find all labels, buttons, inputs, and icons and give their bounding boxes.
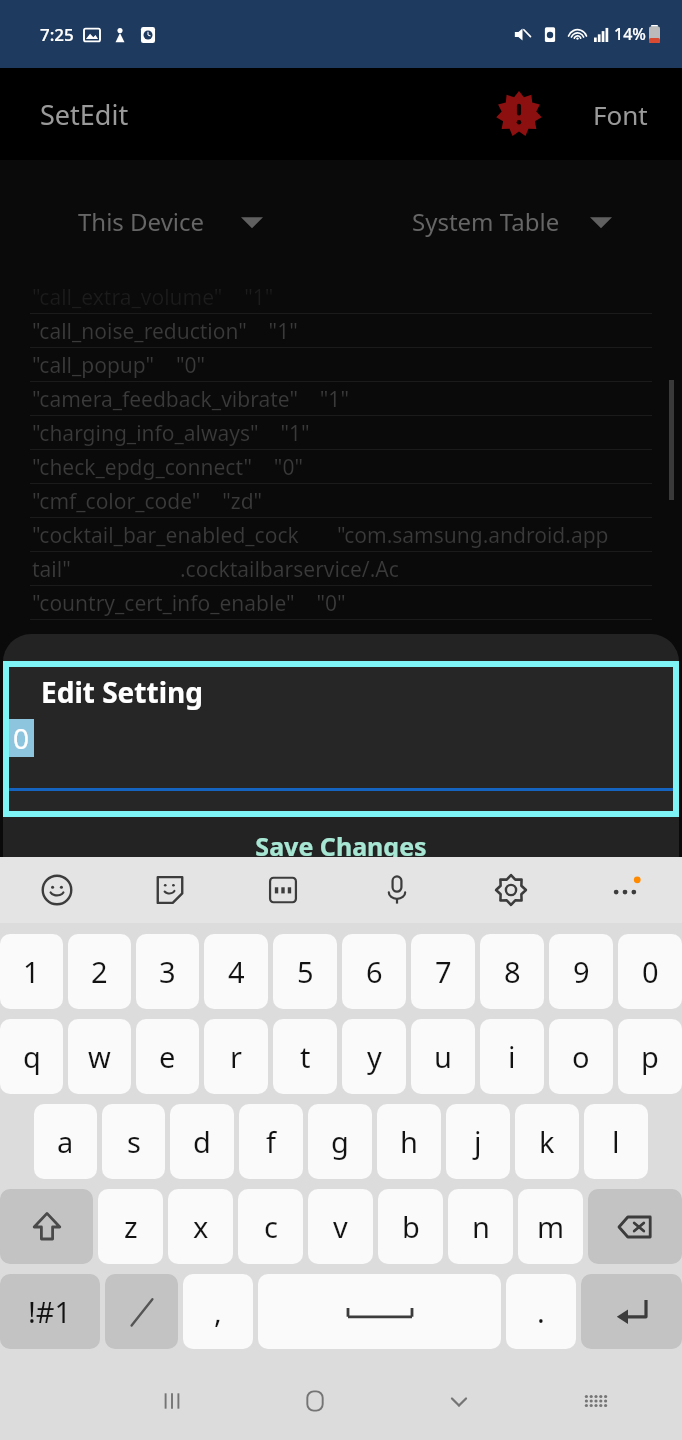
staticText: "call_extra_volume" "1" xyxy=(32,283,274,312)
staticText: 14% xyxy=(614,23,646,45)
button[interactable]: "call_popup" "0" xyxy=(0,348,682,382)
staticText: z xyxy=(124,1207,138,1246)
button[interactable]: p xyxy=(618,1019,682,1094)
button[interactable]: Font xyxy=(593,97,648,132)
button[interactable]: "camera_feedback_vibrate" "1" xyxy=(0,382,682,416)
button[interactable]: 7 xyxy=(411,934,475,1009)
button[interactable]: Save Changes xyxy=(3,817,679,875)
button[interactable]: 6 xyxy=(342,934,406,1009)
button[interactable]: Emoji xyxy=(0,857,113,923)
staticText: 7:25 xyxy=(40,23,74,46)
button[interactable]: . xyxy=(506,1274,576,1349)
button[interactable]: Enter xyxy=(581,1274,682,1349)
staticText: b xyxy=(402,1207,420,1246)
button[interactable]: f xyxy=(239,1104,303,1179)
button[interactable]: l xyxy=(584,1104,648,1179)
staticText: , xyxy=(214,1292,222,1331)
button[interactable]: Backspace xyxy=(588,1189,682,1264)
button[interactable]: "cocktail_bar_enabled_cock "com.samsung.… xyxy=(0,518,682,552)
button[interactable]: i xyxy=(480,1019,544,1094)
staticText: "call_noise_reduction" "1" xyxy=(32,317,298,346)
staticText: !#1 xyxy=(28,1292,72,1331)
button[interactable]: 4 xyxy=(204,934,268,1009)
button[interactable]: tail" .cocktailbarservice/.Ac xyxy=(0,552,682,586)
button[interactable]: x xyxy=(168,1189,233,1264)
button[interactable]: This Device xyxy=(0,205,341,238)
staticText: t xyxy=(300,1037,311,1076)
staticText: d xyxy=(193,1122,211,1161)
button[interactable]: k xyxy=(515,1104,579,1179)
button[interactable]: SetEdit xyxy=(40,96,129,133)
staticText: This Device xyxy=(78,205,205,238)
button[interactable]: d xyxy=(170,1104,234,1179)
staticText: Edit Setting xyxy=(41,673,203,711)
button[interactable]: Keyboard layout xyxy=(531,1362,660,1440)
staticText: 5 xyxy=(297,952,314,991)
button[interactable]: 9 xyxy=(549,934,613,1009)
button[interactable]: Settings xyxy=(454,857,568,923)
button[interactable]: q xyxy=(0,1019,63,1094)
button[interactable]: Warning xyxy=(494,89,544,139)
button[interactable]: 2 xyxy=(68,934,131,1009)
button[interactable]: 8 xyxy=(480,934,544,1009)
button[interactable]: y xyxy=(342,1019,406,1094)
button[interactable]: m xyxy=(518,1189,583,1264)
button[interactable]: b xyxy=(378,1189,443,1264)
button[interactable]: Language xyxy=(105,1274,178,1349)
button[interactable]: , xyxy=(183,1274,253,1349)
button[interactable]: "call_noise_reduction" "1" xyxy=(0,314,682,348)
button[interactable]: 5 xyxy=(273,934,337,1009)
button[interactable]: c xyxy=(238,1189,303,1264)
staticText: 8 xyxy=(504,952,521,991)
staticText: u xyxy=(434,1037,452,1076)
button[interactable]: u xyxy=(411,1019,475,1094)
button[interactable]: z xyxy=(98,1189,163,1264)
button[interactable]: h xyxy=(377,1104,441,1179)
button[interactable]: "country_cert_info_enable" "0" xyxy=(0,586,682,620)
button[interactable]: Space xyxy=(258,1274,501,1349)
button[interactable]: a xyxy=(34,1104,97,1179)
button[interactable]: "check_epdg_connect" "0" xyxy=(0,450,682,484)
button[interactable]: j xyxy=(446,1104,510,1179)
button[interactable]: Sticker xyxy=(113,857,226,923)
staticText: "check_epdg_connect" "0" xyxy=(32,453,303,482)
button[interactable]: n xyxy=(448,1189,513,1264)
button[interactable]: Hide keyboard xyxy=(387,1362,531,1440)
button[interactable]: o xyxy=(549,1019,613,1094)
button[interactable]: t xyxy=(273,1019,337,1094)
staticText: "cmf_color_code" "zd" xyxy=(32,487,263,516)
staticText: 2 xyxy=(91,952,108,991)
staticText: System Table xyxy=(412,205,560,238)
button[interactable]: 3 xyxy=(136,934,199,1009)
staticText: h xyxy=(400,1122,418,1161)
button[interactable]: "charging_info_always" "1" xyxy=(0,416,682,450)
button[interactable]: 1 xyxy=(0,934,63,1009)
button[interactable]: Recent apps xyxy=(100,1362,243,1440)
button[interactable]: "call_extra_volume" "1" xyxy=(0,280,682,314)
button[interactable]: 0 xyxy=(618,934,682,1009)
button[interactable]: Shift xyxy=(0,1189,93,1264)
button[interactable]: Home xyxy=(243,1362,387,1440)
staticText: i xyxy=(508,1037,516,1076)
staticText: "cocktail_bar_enabled_cock "com.samsung.… xyxy=(32,521,609,550)
button[interactable]: e xyxy=(136,1019,199,1094)
button[interactable]: Voice input xyxy=(340,857,454,923)
staticText: p xyxy=(641,1037,659,1076)
button[interactable]: w xyxy=(68,1019,131,1094)
button[interactable]: r xyxy=(204,1019,268,1094)
staticText: w xyxy=(88,1037,111,1076)
button[interactable]: !#1 xyxy=(0,1274,100,1349)
button[interactable]: g xyxy=(308,1104,372,1179)
staticText: s xyxy=(127,1122,141,1161)
button[interactable]: More xyxy=(568,857,682,923)
staticText: o xyxy=(572,1037,590,1076)
button[interactable]: System Table xyxy=(341,205,682,238)
button[interactable]: v xyxy=(308,1189,373,1264)
staticText: e xyxy=(159,1037,176,1076)
button[interactable]: "cmf_color_code" "zd" xyxy=(0,484,682,518)
staticText: "country_cert_info_enable" "0" xyxy=(32,589,346,618)
button[interactable]: s xyxy=(102,1104,165,1179)
staticText: 6 xyxy=(366,952,383,991)
button[interactable]: GIF xyxy=(226,857,340,923)
staticText: l xyxy=(612,1122,620,1161)
